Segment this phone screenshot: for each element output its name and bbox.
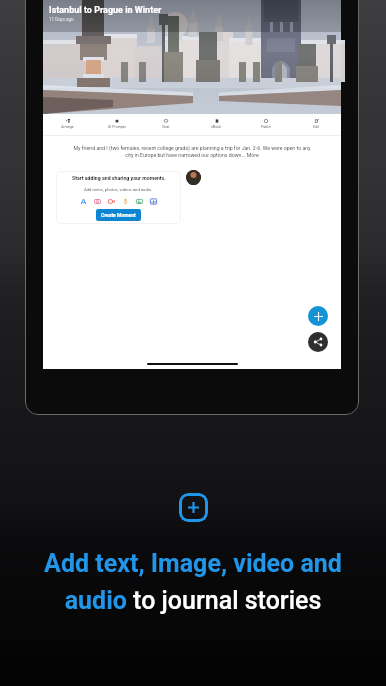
staticText: Istanbul to Prague in Winter <box>49 5 162 16</box>
staticText: Public <box>261 125 271 129</box>
staticText: My friend and I (two females, recent col… <box>69 145 315 159</box>
button[interactable]: tool 3 <box>122 198 129 205</box>
staticText: AI Prompts <box>108 125 126 129</box>
button[interactable]: AI Prompts <box>92 114 141 134</box>
staticText: Chat <box>162 125 170 129</box>
button[interactable]: Add entry <box>179 493 208 522</box>
button[interactable]: Add <box>308 306 328 326</box>
staticText: Start adding and sharing your moments. <box>72 175 166 181</box>
button[interactable]: Edit <box>291 114 341 134</box>
button[interactable]: Profile <box>186 170 201 185</box>
button[interactable]: tool 0 <box>80 198 87 205</box>
staticText: eBook <box>211 125 222 129</box>
button[interactable]: Chat <box>141 114 191 134</box>
button[interactable]: tool 5 <box>150 198 157 205</box>
button[interactable]: Create Moment <box>96 209 141 221</box>
button[interactable]: tool 4 <box>136 198 143 205</box>
staticText: Add notes, photos, videos and audio. <box>84 187 153 192</box>
button[interactable]: Arrange <box>43 114 92 134</box>
button[interactable]: tool 2 <box>108 198 115 205</box>
button[interactable]: Share <box>308 332 328 352</box>
staticText: Edit <box>313 125 320 129</box>
staticText: 11 Days ago <box>49 17 74 22</box>
staticText: Add text, Image, video and audio to jour… <box>0 549 386 615</box>
button[interactable]: Public <box>241 114 291 134</box>
staticText: Create Moment <box>101 212 136 218</box>
button[interactable]: tool 1 <box>94 198 101 205</box>
button[interactable]: eBook <box>191 114 241 134</box>
staticText: Arrange <box>61 125 74 129</box>
